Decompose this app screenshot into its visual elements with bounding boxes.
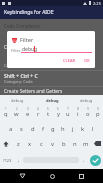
staticText: g	[51, 125, 55, 133]
button[interactable]: c	[36, 136, 47, 151]
button[interactable]: s	[16, 121, 27, 136]
staticText: n	[73, 140, 77, 148]
staticText: d	[31, 125, 35, 133]
button[interactable]: Back	[15, 169, 29, 183]
button[interactable]: debug	[69, 95, 103, 106]
staticText: b	[62, 140, 66, 148]
staticText: debug	[80, 98, 93, 103]
staticText: .	[83, 157, 85, 164]
button[interactable]: h	[58, 121, 68, 136]
staticText: CLEAR	[63, 58, 76, 63]
button[interactable]: debug	[35, 95, 69, 106]
button[interactable]: 9	[83, 106, 93, 121]
staticText: a	[9, 125, 13, 133]
staticText: e	[26, 110, 30, 118]
staticText: 3	[27, 107, 29, 111]
button[interactable]: 7	[63, 106, 73, 121]
button[interactable]: .	[79, 151, 88, 169]
button[interactable]: Shift	[0, 136, 12, 151]
button[interactable]: f	[38, 121, 48, 136]
staticText: o	[86, 110, 90, 118]
button[interactable]: Enter	[88, 151, 103, 169]
staticText: y	[57, 110, 60, 118]
staticText: 4	[37, 107, 39, 111]
staticText: 9	[87, 107, 89, 111]
staticText: h	[61, 125, 65, 133]
button[interactable]: a	[5, 121, 16, 136]
staticText: r	[37, 110, 40, 118]
button[interactable]: m	[80, 136, 91, 151]
staticText: Create Setters and Getters	[4, 88, 63, 94]
button[interactable]: g	[48, 121, 58, 136]
button[interactable]: v	[47, 136, 58, 151]
staticText: z	[17, 140, 20, 148]
staticText: Category: Code	[4, 63, 33, 68]
staticText: j	[72, 125, 74, 133]
staticText: 0	[97, 107, 99, 111]
button[interactable]: CLEAR	[61, 56, 78, 65]
button[interactable]: ,	[14, 151, 23, 169]
button[interactable]: l	[88, 121, 98, 136]
button[interactable]: 4	[33, 106, 43, 121]
button[interactable]: Backspace	[91, 136, 103, 151]
staticText: Filter:	[11, 48, 22, 53]
staticText: q	[4, 110, 8, 118]
button[interactable]: Space	[23, 151, 79, 169]
button[interactable]: ?123	[0, 151, 14, 169]
button[interactable]: debug	[0, 95, 35, 106]
staticText: Create Code from Usage	[4, 44, 58, 50]
staticText: v	[51, 140, 54, 148]
staticText: l	[92, 125, 94, 133]
staticText: Filter	[20, 36, 34, 44]
staticText: 5	[47, 107, 49, 111]
staticText: Category: Code	[4, 79, 33, 84]
staticText: 2	[16, 107, 18, 111]
staticText: c	[40, 140, 43, 148]
staticText: 2:25	[93, 1, 101, 6]
button[interactable]: z	[12, 136, 24, 151]
staticText: w	[14, 110, 19, 118]
button[interactable]: d	[27, 121, 38, 136]
button[interactable]: 6	[53, 106, 63, 121]
staticText: Keybindings for AIDE	[4, 9, 54, 16]
button[interactable]: k	[78, 121, 88, 136]
staticText: 8	[77, 107, 79, 111]
staticText: ?123	[3, 158, 12, 163]
button[interactable]: 2	[11, 106, 22, 121]
staticText: Shift + Ctrl + C	[4, 73, 38, 80]
button[interactable]: 3	[22, 106, 33, 121]
staticText: x	[28, 140, 32, 148]
staticText: debug	[11, 98, 24, 103]
button[interactable]: b	[58, 136, 69, 151]
button[interactable]: j	[68, 121, 78, 136]
button[interactable]: Recents	[74, 169, 88, 183]
button[interactable]: n	[69, 136, 80, 151]
staticText: OK	[84, 58, 90, 63]
staticText: ,	[18, 157, 20, 164]
staticText: m	[83, 140, 89, 148]
button[interactable]: x	[24, 136, 36, 151]
staticText: 6	[57, 107, 59, 111]
staticText: t	[47, 110, 50, 118]
staticText: k	[81, 125, 85, 133]
button[interactable]: 8	[73, 106, 83, 121]
staticText: debug	[22, 46, 38, 53]
staticText: u	[66, 110, 70, 118]
staticText: 1	[5, 107, 7, 111]
staticText: i	[77, 110, 79, 118]
staticText: s	[20, 125, 23, 133]
button[interactable]: 0	[93, 106, 103, 121]
staticText: f	[42, 125, 44, 133]
button[interactable]: 5	[43, 106, 53, 121]
button[interactable]: Home	[45, 169, 59, 183]
staticText: debug	[46, 98, 59, 103]
staticText: 7	[67, 107, 69, 111]
button[interactable]: 1	[0, 106, 11, 121]
button[interactable]: OK	[82, 56, 92, 65]
staticText: p	[96, 110, 100, 118]
staticText: Code Completion	[4, 23, 41, 29]
